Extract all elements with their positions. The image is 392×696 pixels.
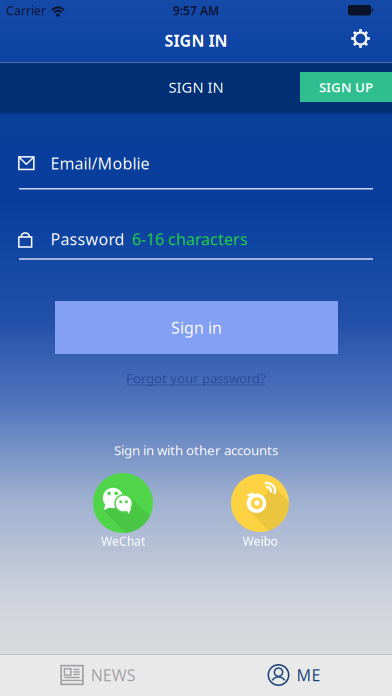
button[interactable]: Password	[19, 227, 373, 260]
staticText: Email/Moblie	[50, 153, 149, 174]
staticText: ME	[296, 664, 320, 686]
button[interactable]: NEWS	[0, 654, 196, 696]
button[interactable]: ME	[196, 654, 392, 696]
staticText: 6-16 characters	[132, 228, 248, 250]
button[interactable]: Sign in with Weibo	[231, 474, 289, 549]
staticText: SIGN IN	[164, 30, 227, 51]
button[interactable]: SIGN UP	[300, 72, 392, 102]
staticText: SIGN UP	[319, 78, 373, 96]
button[interactable]: Sign in	[55, 301, 338, 354]
staticText: WeChat	[101, 533, 145, 549]
staticText: NEWS	[91, 664, 136, 686]
staticText: Weibo	[242, 533, 277, 549]
button[interactable]: Sign in with WeChat	[93, 473, 153, 549]
staticText: 9:57 AM	[173, 2, 219, 18]
button[interactable]: Settings	[347, 25, 373, 51]
staticText: Password	[50, 228, 124, 250]
staticText: Sign in with other accounts	[114, 441, 278, 459]
staticText: Sign in	[171, 317, 222, 338]
button[interactable]: Forgot your password?	[126, 369, 266, 387]
button[interactable]: Email/Moblie	[19, 153, 373, 190]
staticText: SIGN IN	[168, 77, 223, 97]
staticText: Carrier	[6, 2, 46, 18]
staticText: Forgot your password?	[126, 369, 266, 387]
